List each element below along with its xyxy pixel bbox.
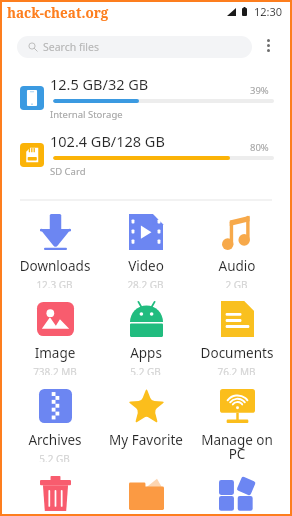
button[interactable]: Archives	[9, 375, 100, 462]
staticText: 5.2 GB	[130, 365, 161, 375]
button[interactable]: 102.4 GB/128 GB	[2, 128, 290, 185]
staticText: 39%	[250, 84, 269, 97]
button[interactable]: Audio	[191, 201, 282, 288]
staticText: Image	[18, 344, 92, 362]
button[interactable]: Search files	[17, 36, 252, 58]
button[interactable]: Recycle bin	[9, 462, 100, 514]
staticText: Archives	[18, 431, 92, 449]
staticText: 2 GB	[225, 278, 248, 288]
button[interactable]: Documents	[191, 288, 282, 375]
staticText: hack-cheat.org	[7, 4, 109, 22]
staticText: Apps	[109, 344, 183, 362]
staticText: Video	[109, 257, 183, 275]
button[interactable]: Video	[100, 201, 191, 288]
button[interactable]: Downloads	[9, 201, 100, 288]
staticText: 28.2 GB	[127, 278, 164, 288]
staticText: My Favorite	[109, 431, 183, 449]
staticText: 76.2 MB	[217, 365, 256, 375]
button[interactable]: Apps	[100, 288, 191, 375]
staticText: 12.3 GB	[36, 278, 73, 288]
staticText: Manage on PC	[200, 431, 274, 462]
staticText: SD Card	[50, 165, 86, 178]
staticText: Downloads	[18, 257, 92, 275]
button[interactable]: Image	[9, 288, 100, 375]
staticText: Audio	[200, 257, 274, 275]
staticText: Search files	[43, 40, 99, 54]
staticText: 12.5 GB/32 GB	[50, 74, 149, 94]
button[interactable]: More options	[252, 36, 284, 58]
button[interactable]: New folder	[100, 462, 191, 514]
staticText: 12:30	[254, 4, 283, 19]
staticText: 738.2 MB	[33, 365, 77, 375]
staticText: 5.2 GB	[39, 452, 70, 462]
button[interactable]: New apps	[191, 462, 282, 514]
staticText: Documents	[200, 344, 274, 362]
button[interactable]: My Favorite	[100, 375, 191, 462]
staticText: 80%	[250, 141, 269, 154]
staticText: Internal Storage	[50, 108, 123, 121]
button[interactable]: Manage on PC	[191, 375, 282, 462]
button[interactable]: 12.5 GB/32 GB	[2, 71, 290, 128]
staticText: 102.4 GB/128 GB	[50, 131, 165, 151]
